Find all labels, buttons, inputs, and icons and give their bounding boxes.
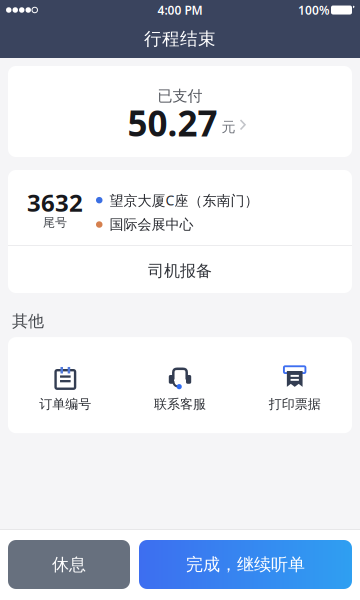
staticText: 望京大厦C座（东南门） <box>109 191 258 210</box>
button[interactable]: 订单编号 <box>8 337 123 433</box>
staticText: 已支付 <box>157 87 202 105</box>
staticText: 100% <box>298 2 330 18</box>
staticText: 休息 <box>52 554 86 575</box>
staticText: 国际会展中心 <box>109 216 193 233</box>
staticText: 3632 <box>27 186 83 219</box>
staticText: 联系客服 <box>154 396 206 412</box>
staticText: 订单编号 <box>39 396 91 412</box>
staticText: 元 <box>221 118 235 136</box>
button[interactable]: 司机报备 <box>8 246 352 293</box>
staticText: 打印票据 <box>269 396 321 412</box>
staticText: 50.27 <box>127 99 217 147</box>
button[interactable]: 联系客服 <box>123 337 237 433</box>
staticText: 其他 <box>12 311 44 331</box>
staticText: 完成，继续听单 <box>186 554 305 575</box>
button[interactable]: 打印票据 <box>237 337 352 433</box>
button[interactable]: 休息 <box>8 540 130 589</box>
staticText: 4:00 PM <box>157 2 202 18</box>
staticText: 司机报备 <box>148 261 212 281</box>
staticText: 尾号 <box>43 215 67 230</box>
button[interactable]: 已支付 <box>8 66 352 157</box>
button[interactable]: 完成，继续听单 <box>139 540 352 589</box>
staticText: 行程结束 <box>144 28 216 50</box>
